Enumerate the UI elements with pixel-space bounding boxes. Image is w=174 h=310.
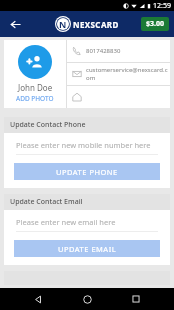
button[interactable]: Home (76, 288, 98, 310)
staticText: UPDATE PHONE (56, 167, 118, 177)
staticText: Update Contact Phone (10, 120, 86, 130)
button[interactable]: Back (6, 15, 24, 33)
staticText: UPDATE EMAIL (58, 244, 117, 254)
button[interactable]: Email (67, 63, 170, 85)
staticText: N (59, 18, 67, 30)
button[interactable]: Recent apps (125, 288, 147, 310)
button[interactable]: Please enter new mobile number here (16, 140, 158, 155)
staticText: 12:59 (153, 1, 171, 11)
staticText: Please enter new email here (16, 217, 116, 227)
button[interactable]: Phone (67, 40, 170, 62)
staticText: NEXSCARD (73, 19, 119, 30)
button[interactable]: UPDATE PHONE (14, 163, 160, 180)
staticText: 8017428830 (86, 47, 121, 55)
staticText: Update Contact Email (10, 197, 83, 207)
button[interactable]: Please enter new email here (16, 217, 158, 232)
button[interactable]: UPDATE EMAIL (14, 240, 160, 257)
button[interactable]: Back (27, 288, 49, 310)
button[interactable]: $3.00 (141, 17, 169, 31)
staticText: customerservice@nexscard.com (86, 66, 170, 82)
staticText: $3.00 (146, 19, 164, 29)
button[interactable]: Add photo (18, 45, 52, 79)
staticText: Please enter new mobile number here (16, 140, 151, 150)
button[interactable]: Address (67, 86, 170, 108)
button[interactable]: ADD PHOTO (16, 94, 54, 103)
staticText: John Doe (18, 82, 53, 93)
staticText: ADD PHOTO (16, 94, 54, 103)
